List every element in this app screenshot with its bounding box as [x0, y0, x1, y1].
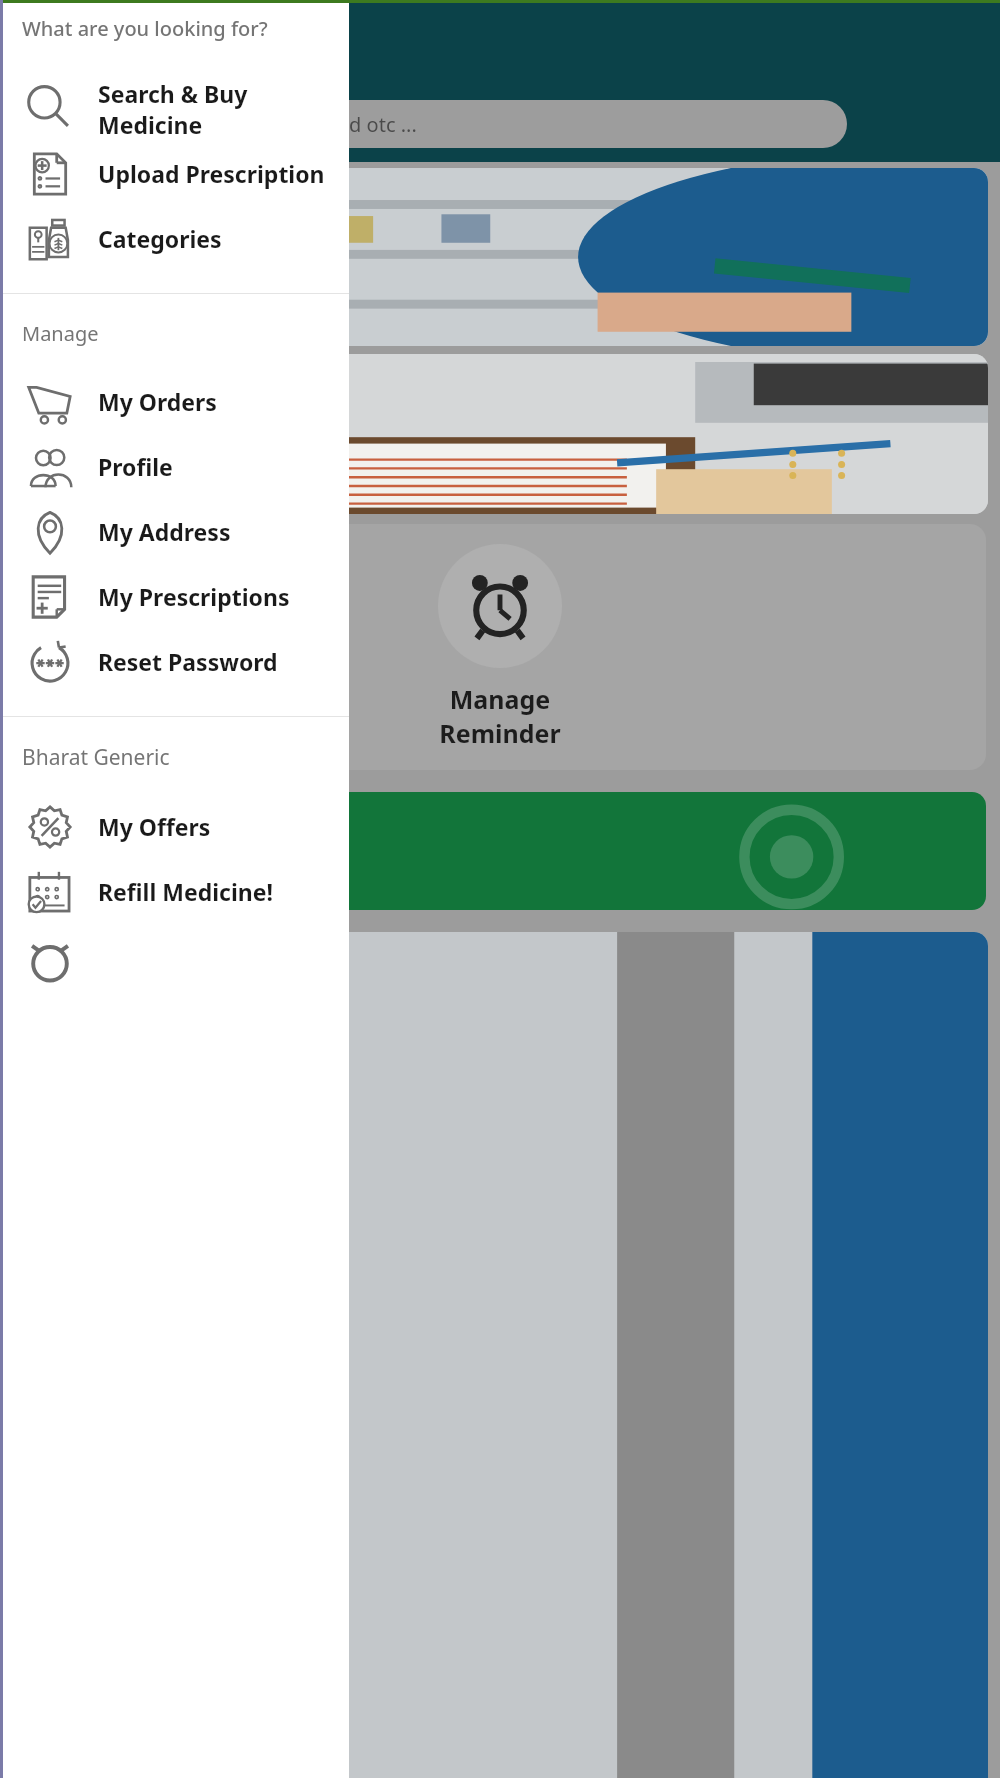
staticText: My Prescriptions [98, 581, 290, 612]
staticText: Reset Password [98, 646, 278, 677]
button[interactable] [12, 168, 988, 346]
button[interactable]: Refill Medicine! [0, 859, 349, 924]
button[interactable]: My Prescriptions [0, 564, 349, 629]
staticText: Upload Prescription [98, 158, 325, 189]
button[interactable]: My Address [0, 499, 349, 564]
button[interactable]: Search & Buy Medicine [0, 76, 349, 141]
button[interactable]: Search medicine and otc ... [150, 100, 847, 148]
button[interactable] [12, 354, 988, 514]
staticText: Bharat Generic [22, 743, 170, 772]
button[interactable]: My Offers [0, 794, 349, 859]
button[interactable] [12, 932, 988, 1778]
staticText: Refill Medicine! [98, 876, 274, 907]
button[interactable]: My Orders [0, 369, 349, 434]
staticText: My Orders [98, 386, 217, 417]
staticText: My Offers [98, 811, 211, 842]
staticText: What are you looking for? [22, 15, 268, 42]
staticText: Manage [22, 320, 99, 347]
staticText: Categories [98, 223, 222, 254]
button[interactable]: Upload Prescription [0, 141, 349, 206]
staticText: Shop [30, 834, 94, 869]
button[interactable]: Reset Password [0, 629, 349, 694]
staticText: Search & Buy Medicine [98, 78, 349, 140]
button[interactable]: Categories [0, 206, 349, 271]
button[interactable]: Shop [14, 792, 986, 910]
staticText: Search medicine and otc ... [166, 111, 417, 138]
button[interactable]: Reminder [0, 924, 349, 989]
staticText: My Address [98, 516, 231, 547]
staticText: Profile [98, 451, 173, 482]
button[interactable]: Manage Reminder [14, 524, 986, 770]
button[interactable]: Profile [0, 434, 349, 499]
staticText: Manage Reminder [439, 682, 561, 750]
